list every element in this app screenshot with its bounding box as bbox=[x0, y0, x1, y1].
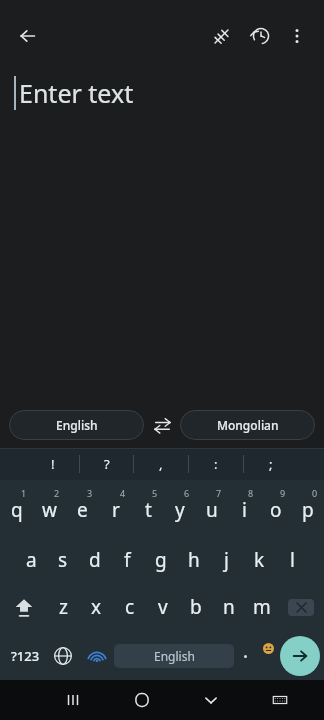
staticText: e bbox=[77, 497, 88, 523]
staticText: l bbox=[290, 547, 295, 573]
button[interactable]: ?123 bbox=[4, 632, 46, 680]
button[interactable]: : bbox=[189, 448, 243, 480]
button[interactable] bbox=[234, 632, 256, 680]
button[interactable]: Enter bbox=[280, 636, 320, 676]
button[interactable]: Keyboard settings bbox=[245, 680, 314, 720]
staticText: n bbox=[223, 594, 235, 620]
staticText: : bbox=[214, 455, 218, 473]
button[interactable]: 2 bbox=[33, 482, 66, 532]
button[interactable]: , bbox=[134, 448, 188, 480]
button[interactable]: Swap languages bbox=[144, 408, 180, 442]
button[interactable]: 4 bbox=[99, 482, 132, 532]
button[interactable]: v bbox=[146, 582, 179, 632]
staticText: w bbox=[42, 497, 57, 523]
button[interactable]: c bbox=[113, 582, 146, 632]
button[interactable]: Back bbox=[10, 18, 46, 54]
staticText: ! bbox=[51, 455, 55, 473]
button[interactable]: English bbox=[114, 644, 234, 668]
button[interactable]: m bbox=[245, 582, 278, 632]
staticText: m bbox=[253, 594, 271, 620]
button[interactable]: 1 bbox=[0, 482, 33, 532]
staticText: x bbox=[91, 594, 102, 620]
button[interactable]: 9 bbox=[260, 482, 292, 532]
staticText: , bbox=[159, 455, 163, 473]
staticText: 4 bbox=[120, 487, 126, 499]
staticText: z bbox=[59, 594, 68, 620]
button[interactable]: 6 bbox=[164, 482, 196, 532]
staticText: English bbox=[154, 648, 195, 664]
staticText: 0 bbox=[312, 487, 318, 499]
staticText: f bbox=[124, 547, 131, 573]
staticText: i bbox=[242, 497, 247, 523]
staticText: j bbox=[224, 547, 229, 573]
button[interactable]: 0 bbox=[292, 482, 324, 532]
button[interactable]: Change keyboard language bbox=[46, 632, 80, 680]
staticText: c bbox=[125, 594, 135, 620]
staticText: ; bbox=[269, 455, 273, 473]
staticText: q bbox=[11, 497, 23, 523]
button[interactable]: a bbox=[15, 532, 47, 582]
button[interactable]: Emoji bbox=[256, 632, 280, 680]
button[interactable]: 8 bbox=[228, 482, 260, 532]
staticText: s bbox=[58, 547, 68, 573]
button[interactable]: Voice input bbox=[80, 632, 114, 680]
button[interactable]: Mongolian bbox=[180, 410, 315, 440]
staticText: b bbox=[190, 594, 202, 620]
staticText: 9 bbox=[280, 487, 286, 499]
button[interactable]: ; bbox=[244, 448, 298, 480]
staticText: 8 bbox=[248, 487, 254, 499]
button[interactable]: g bbox=[144, 532, 177, 582]
staticText: k bbox=[254, 547, 265, 573]
staticText: r bbox=[112, 497, 120, 523]
staticText: 6 bbox=[184, 487, 190, 499]
staticText: h bbox=[188, 547, 200, 573]
staticText: 7 bbox=[216, 487, 222, 499]
button[interactable]: s bbox=[47, 532, 79, 582]
staticText: ? bbox=[104, 455, 110, 473]
staticText: t bbox=[145, 497, 152, 523]
staticText: 1 bbox=[21, 487, 27, 499]
staticText: u bbox=[206, 497, 218, 523]
button[interactable]: ! bbox=[26, 448, 79, 480]
staticText: d bbox=[89, 547, 101, 573]
staticText: p bbox=[302, 497, 314, 523]
button[interactable]: English bbox=[9, 410, 144, 440]
staticText: o bbox=[270, 497, 282, 523]
staticText: g bbox=[155, 547, 167, 573]
button[interactable]: 3 bbox=[66, 482, 99, 532]
button[interactable]: b bbox=[179, 582, 212, 632]
button[interactable]: Backspace bbox=[278, 582, 324, 632]
button[interactable]: ? bbox=[80, 448, 133, 480]
button[interactable]: Recents bbox=[38, 680, 107, 720]
button[interactable]: More options bbox=[280, 19, 314, 53]
button[interactable]: Hide keyboard bbox=[176, 680, 245, 720]
button[interactable]: History bbox=[244, 19, 278, 53]
button[interactable]: l bbox=[276, 532, 309, 582]
button[interactable]: Home bbox=[107, 680, 176, 720]
staticText: 3 bbox=[87, 487, 93, 499]
button[interactable]: j bbox=[210, 532, 243, 582]
staticText: Mongolian bbox=[217, 417, 279, 433]
staticText: Enter text bbox=[19, 76, 134, 110]
button[interactable]: z bbox=[47, 582, 80, 632]
button[interactable]: 5 bbox=[132, 482, 164, 532]
staticText: English bbox=[56, 417, 98, 433]
staticText: a bbox=[26, 547, 37, 573]
staticText: 2 bbox=[54, 487, 60, 499]
staticText: 5 bbox=[152, 487, 158, 499]
button[interactable]: h bbox=[177, 532, 210, 582]
button[interactable]: Handwriting input bbox=[204, 19, 238, 53]
button[interactable]: Enter text bbox=[0, 58, 324, 402]
button[interactable]: n bbox=[212, 582, 245, 632]
staticText: v bbox=[158, 594, 168, 620]
button[interactable]: x bbox=[80, 582, 113, 632]
button[interactable]: k bbox=[243, 532, 276, 582]
button[interactable]: Shift bbox=[0, 582, 47, 632]
button[interactable]: f bbox=[111, 532, 144, 582]
button[interactable]: d bbox=[79, 532, 111, 582]
button[interactable]: 7 bbox=[196, 482, 228, 532]
staticText: ?123 bbox=[11, 647, 40, 665]
staticText: y bbox=[175, 497, 185, 523]
